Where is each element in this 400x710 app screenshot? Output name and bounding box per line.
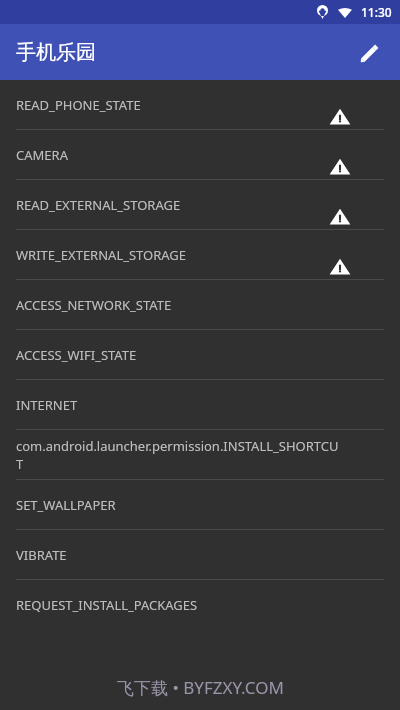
button[interactable]: READ_PHONE_STATE: [0, 80, 400, 130]
staticText: READ_EXTERNAL_STORAGE: [16, 196, 181, 214]
other: Warning: [330, 157, 350, 177]
staticText: ACCESS_NETWORK_STATE: [16, 296, 172, 314]
staticText: 11:30: [361, 4, 392, 20]
button[interactable]: WRITE_EXTERNAL_STORAGE: [0, 230, 400, 280]
staticText: 手机乐园: [16, 40, 96, 65]
staticText: INTERNET: [16, 396, 78, 414]
staticText: VIBRATE: [16, 546, 67, 564]
button[interactable]: ACCESS_NETWORK_STATE: [0, 280, 400, 330]
staticText: WRITE_EXTERNAL_STORAGE: [16, 246, 187, 264]
button[interactable]: READ_EXTERNAL_STORAGE: [0, 180, 400, 230]
button[interactable]: Edit: [351, 32, 391, 72]
staticText: REQUEST_INSTALL_PACKAGES: [16, 596, 198, 614]
button[interactable]: INTERNET: [0, 380, 400, 430]
staticText: com.android.launcher.permission.INSTALL_…: [16, 437, 344, 473]
button[interactable]: CAMERA: [0, 130, 400, 180]
other: Warning: [330, 257, 350, 277]
button[interactable]: VIBRATE: [0, 530, 400, 580]
button[interactable]: ACCESS_WIFI_STATE: [0, 330, 400, 380]
button[interactable]: SET_WALLPAPER: [0, 480, 400, 530]
staticText: READ_PHONE_STATE: [16, 96, 141, 114]
button[interactable]: com.android.launcher.permission.INSTALL_…: [0, 430, 400, 480]
staticText: ACCESS_WIFI_STATE: [16, 346, 137, 364]
staticText: CAMERA: [16, 146, 68, 164]
other: Warning: [330, 107, 350, 127]
button[interactable]: REQUEST_INSTALL_PACKAGES: [0, 580, 400, 630]
other: Warning: [330, 207, 350, 227]
staticText: SET_WALLPAPER: [16, 496, 116, 514]
staticText: 飞下载 • BYFZXY.COM: [117, 676, 284, 699]
